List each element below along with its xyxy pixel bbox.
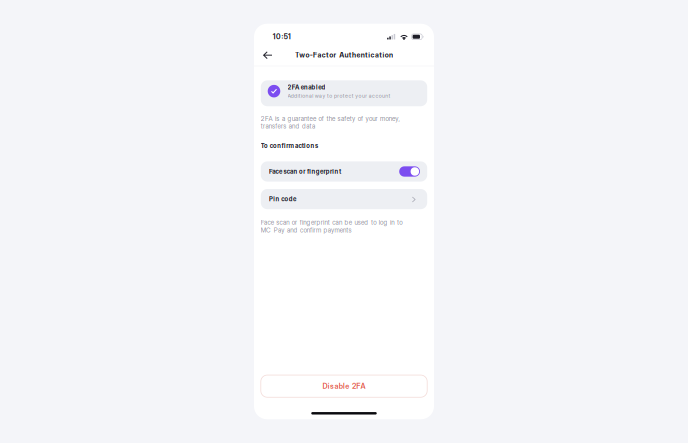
staticText: Pin code: [269, 195, 296, 203]
staticText: Disable 2FA: [322, 382, 365, 391]
staticText: 10:51: [273, 32, 291, 41]
staticText: Additional way to protect your account: [287, 92, 391, 99]
button[interactable]: Pin code: [261, 189, 427, 209]
staticText: Two-Factor Authentication: [295, 51, 393, 59]
staticText: To confirm actions: [261, 142, 318, 150]
staticText: 2FA is a guarantee of the safety of your…: [261, 115, 400, 130]
button[interactable]: Back: [263, 44, 283, 64]
button[interactable]: Face scan or fingerprint: [261, 161, 427, 182]
staticText: Face scan or fingerprint: [269, 168, 341, 175]
staticText: 2FA enabled: [287, 83, 325, 91]
staticText: Face scan or fingerprint can be used to …: [261, 219, 402, 234]
button[interactable]: Disable 2FA: [261, 375, 427, 397]
